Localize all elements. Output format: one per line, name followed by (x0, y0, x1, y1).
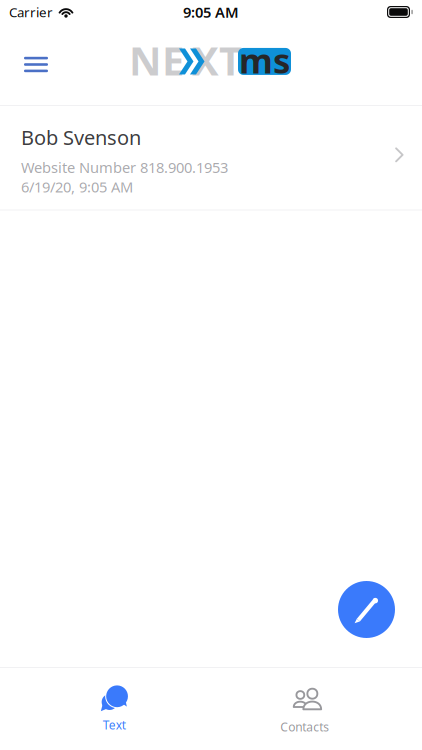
staticText: NE (129, 33, 184, 86)
button[interactable]: Bob Svenson (0, 106, 422, 209)
staticText: Website Number 818.900.1953 (21, 158, 228, 177)
staticText: Carrier (9, 3, 53, 21)
button[interactable]: New message (338, 581, 395, 638)
staticText: 6/19/20, 9:05 AM (21, 177, 133, 196)
staticText: 9:05 AM (183, 2, 239, 22)
staticText: XT (192, 33, 242, 86)
button[interactable]: Menu (0, 45, 64, 86)
button[interactable]: Text (19, 668, 209, 750)
staticText: Bob Svenson (21, 124, 141, 151)
staticText: ms (239, 37, 290, 83)
staticText: Text (103, 717, 126, 733)
button[interactable]: Contacts (209, 668, 400, 750)
staticText: Contacts (280, 719, 329, 735)
